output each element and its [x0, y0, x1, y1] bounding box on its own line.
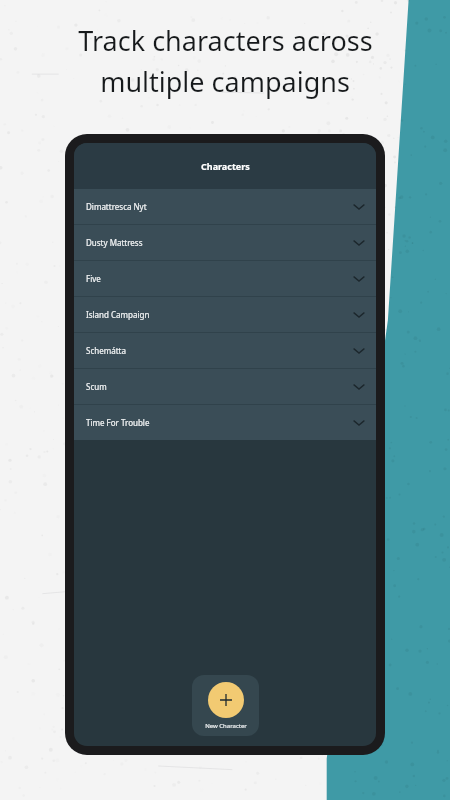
button[interactable]: Time For Trouble: [74, 405, 376, 440]
button[interactable]: Five: [74, 261, 376, 296]
button[interactable]: Scum: [74, 369, 376, 404]
staticText: Time For Trouble: [86, 417, 354, 428]
staticText: Dusty Mattress: [86, 237, 354, 248]
button[interactable]: Dimattresca Nyt: [74, 189, 376, 224]
staticText: Scum: [86, 381, 354, 392]
staticText: New Character: [205, 722, 247, 730]
staticText: Track characters across: [78, 22, 373, 59]
staticText: Dimattresca Nyt: [86, 201, 354, 212]
staticText: Island Campaign: [86, 309, 354, 320]
other: New Character: [208, 682, 244, 718]
staticText: Schemátta: [86, 345, 354, 356]
button[interactable]: Island Campaign: [74, 297, 376, 332]
staticText: multiple campaigns: [100, 63, 350, 100]
staticText: Five: [86, 273, 354, 284]
button[interactable]: Dusty Mattress: [74, 225, 376, 260]
button[interactable]: Schemátta: [74, 333, 376, 368]
button[interactable]: New Character: [192, 675, 259, 736]
staticText: Characters: [201, 160, 250, 172]
